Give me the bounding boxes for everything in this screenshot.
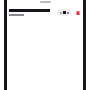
button[interactable]: Decrease quantity <box>7 8 83 17</box>
button[interactable]: Decrease quantity <box>59 11 63 15</box>
button[interactable]: Increase quantity <box>66 11 69 15</box>
button[interactable]: Remove item <box>74 9 81 16</box>
